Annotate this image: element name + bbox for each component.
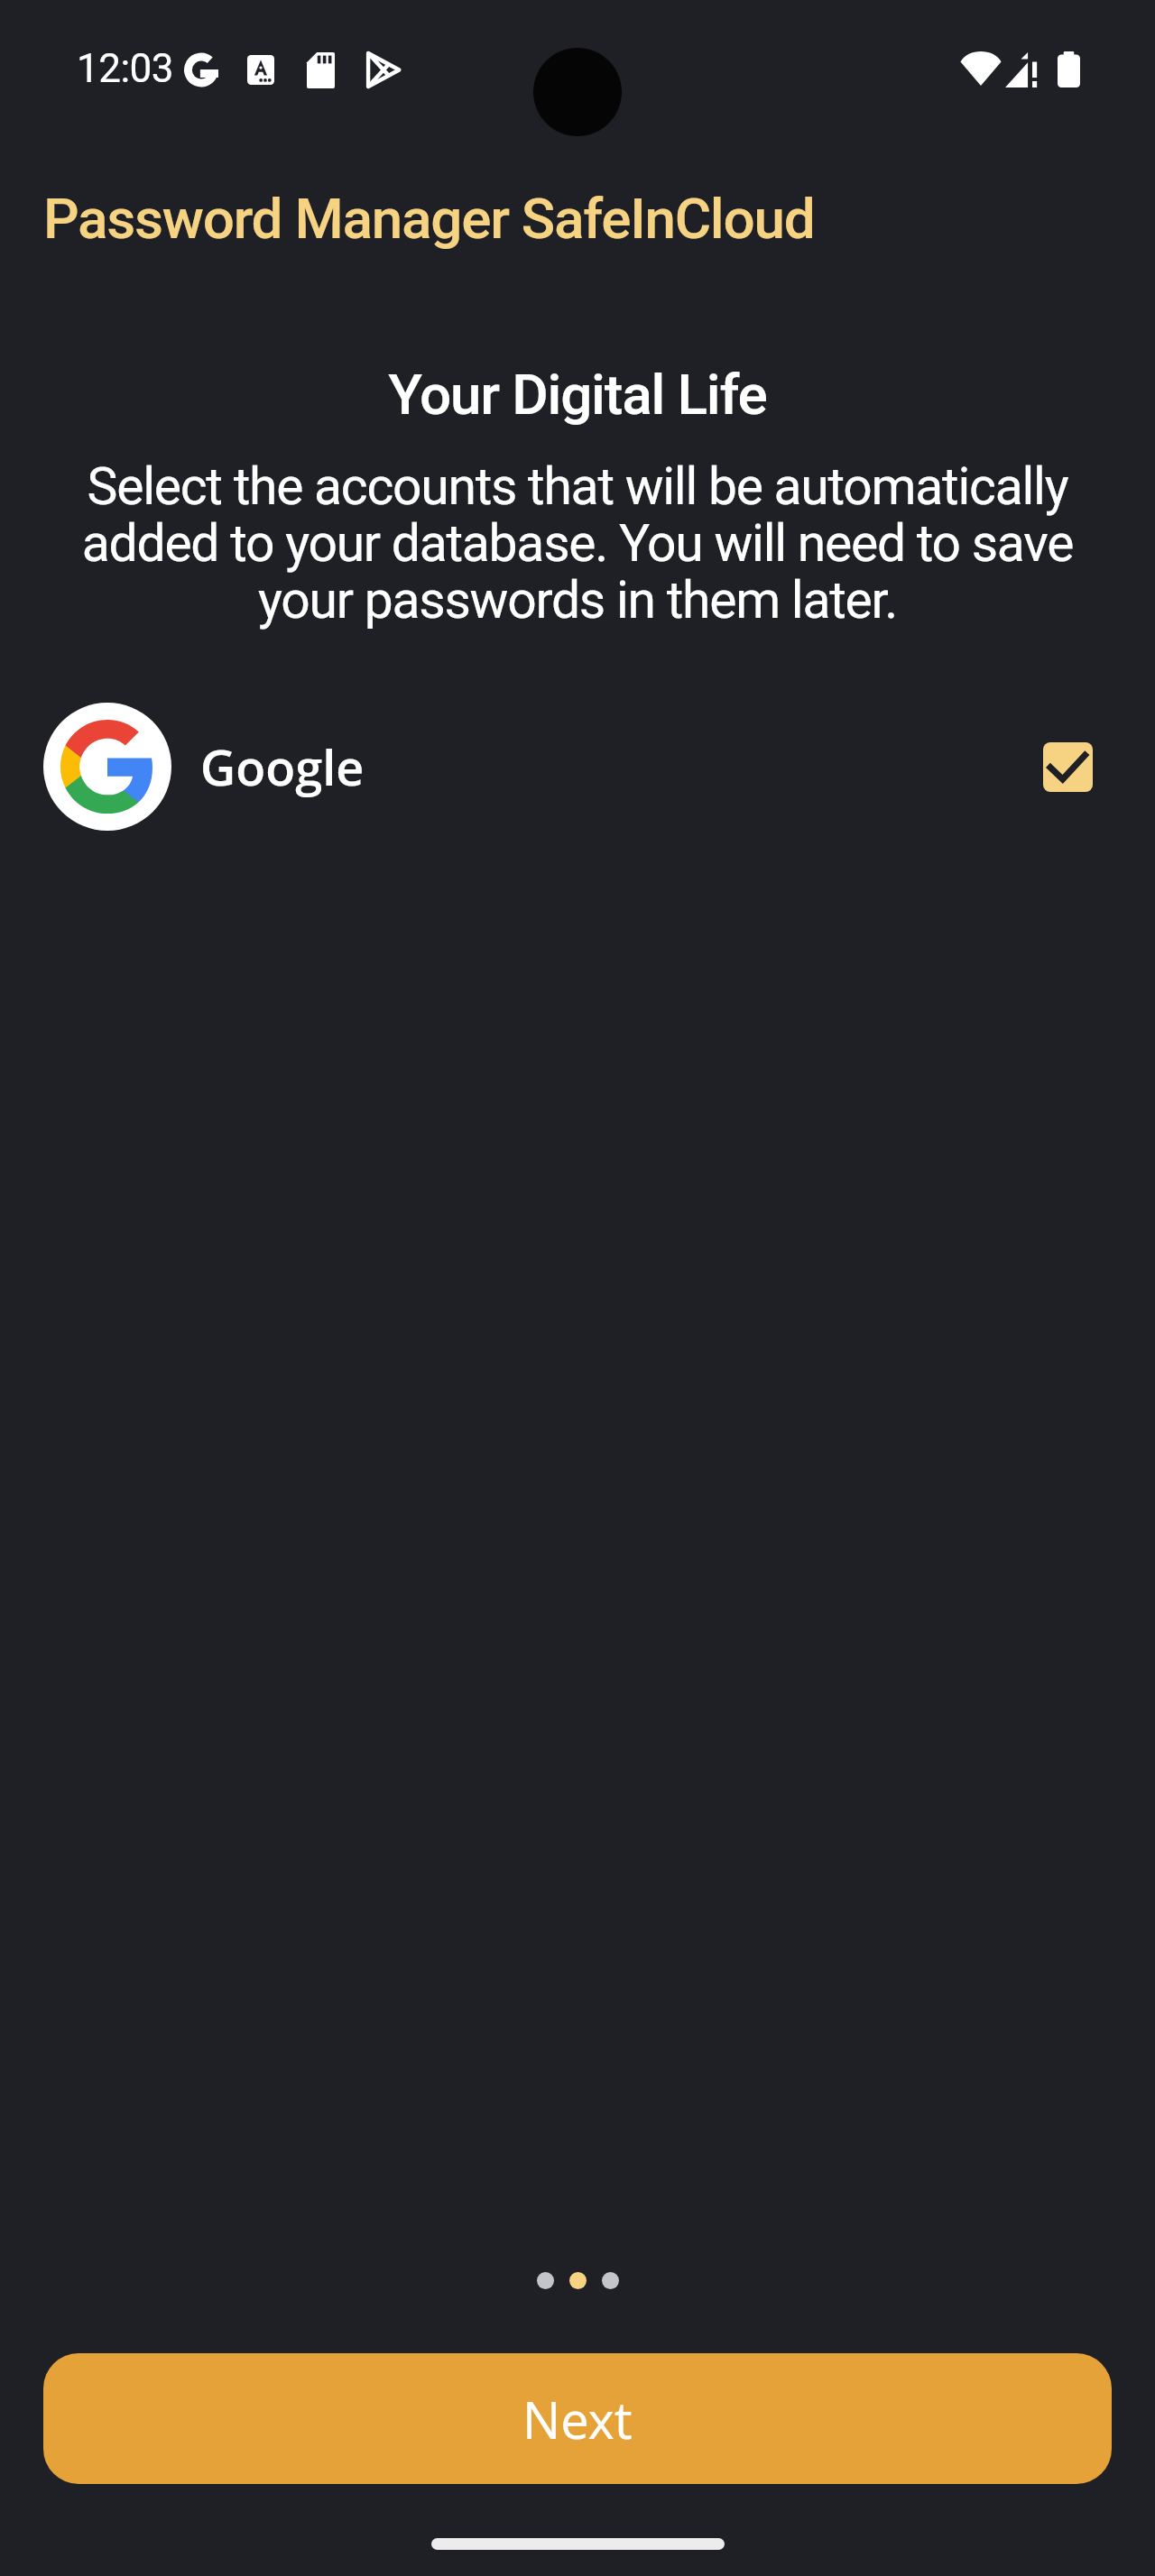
staticText: Google [200,733,365,800]
staticText: Password Manager SafeInCloud [43,186,815,252]
staticText: 12:03 [77,45,174,92]
staticText: Select the accounts that will be automat… [42,456,1113,630]
button[interactable]: Google [0,695,1155,839]
button[interactable]: Next [43,2353,1112,2484]
button[interactable]: Google account selected [1043,742,1093,792]
staticText: Next [522,2385,633,2453]
staticText: Your Digital Life [0,362,1155,428]
